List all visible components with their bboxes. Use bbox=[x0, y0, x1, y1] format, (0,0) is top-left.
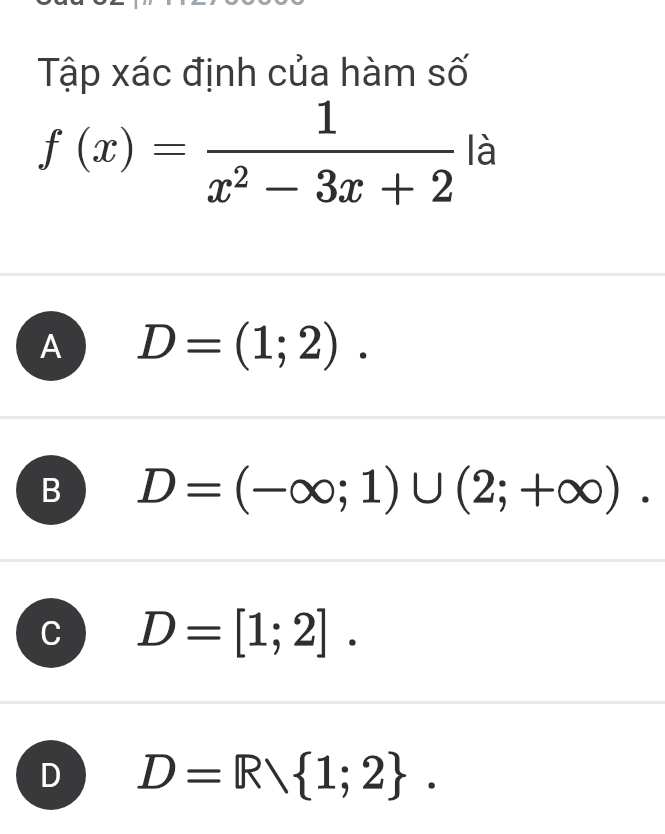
staticText: D bbox=[40, 756, 62, 795]
button[interactable]: B bbox=[0, 419, 665, 559]
staticText: 𝑓 (𝑥) = bbox=[36, 124, 187, 170]
staticText: C bbox=[40, 614, 62, 653]
staticText: B bbox=[41, 471, 62, 510]
staticText: 𝑓 (𝑥) = bbox=[37, 124, 188, 170]
staticText: Tập xác định của hàm số bbox=[37, 50, 469, 96]
staticText: 𝑥2 − 3𝑥 + 2 bbox=[207, 162, 454, 210]
staticText: là bbox=[466, 128, 498, 175]
staticText: 𝐷 = (−∞; 1) ∪ (2; +∞) . bbox=[136, 463, 653, 511]
staticText: A bbox=[40, 327, 62, 366]
staticText: Câu 32 |#412756666 bbox=[34, 0, 306, 12]
button[interactable]: A bbox=[0, 276, 665, 416]
staticText: 𝐷 = [1; 2] . bbox=[136, 606, 360, 654]
button[interactable]: C bbox=[0, 562, 665, 701]
staticText: 𝐷 = (1; 2) . bbox=[136, 319, 370, 367]
staticText: 𝐷 = ℝ∖{1; 2} . bbox=[136, 749, 439, 797]
staticText: 1 bbox=[315, 94, 340, 142]
button[interactable]: D bbox=[0, 704, 665, 834]
